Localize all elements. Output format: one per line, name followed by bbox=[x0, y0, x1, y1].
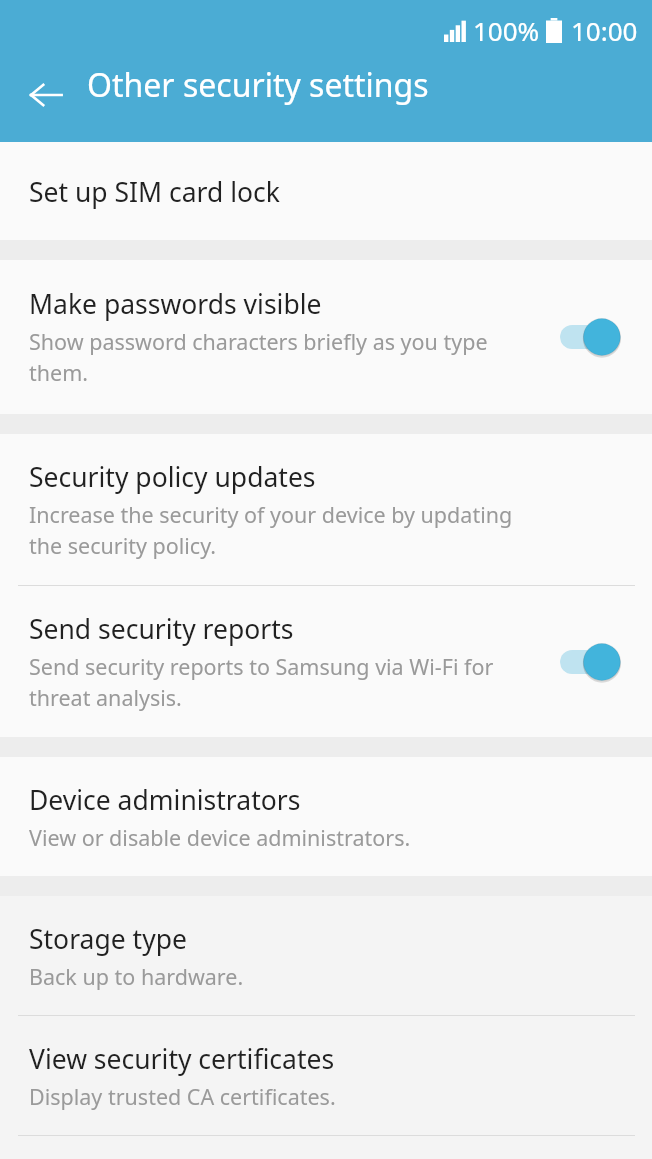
staticText: Send security reports bbox=[29, 611, 294, 647]
staticText: Device administrators bbox=[29, 782, 301, 818]
button[interactable]: Device administrators bbox=[0, 757, 652, 876]
staticText: View or disable device administrators. bbox=[29, 823, 549, 852]
staticText: View security certificates bbox=[29, 1041, 335, 1077]
staticText: Increase the security of your device by … bbox=[29, 500, 549, 561]
button[interactable]: Send security reports bbox=[0, 586, 652, 737]
button[interactable]: View security certificates bbox=[0, 1016, 652, 1135]
staticText: Display trusted CA certificates. bbox=[29, 1082, 549, 1111]
button[interactable]: Set up SIM card lock bbox=[0, 142, 652, 240]
button[interactable]: Make passwords visible bbox=[0, 260, 652, 414]
staticText: Send security reports to Samsung via Wi-… bbox=[29, 652, 548, 713]
staticText: Make passwords visible bbox=[29, 286, 322, 322]
staticText: Security policy updates bbox=[29, 459, 316, 495]
staticText: Other security settings bbox=[87, 63, 429, 107]
staticText: Set up SIM card lock bbox=[29, 174, 280, 210]
button[interactable]: Security policy updates bbox=[0, 434, 652, 585]
staticText: 10:00 bbox=[571, 13, 638, 48]
button[interactable]: Toggle, on bbox=[560, 640, 622, 684]
staticText: Storage type bbox=[29, 921, 187, 957]
button[interactable]: Navigate up bbox=[16, 65, 76, 125]
button[interactable]: Toggle, on bbox=[560, 315, 622, 359]
staticText: Back up to hardware. bbox=[29, 962, 549, 991]
staticText: Show password characters briefly as you … bbox=[29, 327, 548, 388]
button[interactable]: Storage type bbox=[0, 896, 652, 1015]
staticText: 100% bbox=[473, 13, 540, 48]
